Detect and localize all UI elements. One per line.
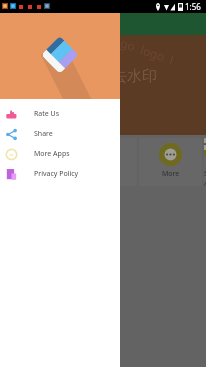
staticText: Save: [204, 169, 206, 186]
staticText: 去水印: [112, 67, 157, 86]
button[interactable]: Save: [204, 138, 206, 186]
staticText: o logo logo logo l: [66, 35, 177, 68]
staticText: Privacy Policy: [34, 169, 79, 179]
button[interactable]: Text: [74, 138, 137, 186]
button[interactable]: Privacy Policy: [0, 164, 120, 184]
button[interactable]: Share: [0, 124, 120, 144]
button[interactable]: More Apps: [0, 144, 120, 164]
button[interactable]: More: [139, 138, 202, 186]
staticText: 1:56: [185, 1, 201, 12]
button[interactable]: Crop: [9, 138, 72, 186]
button[interactable]: Rate Us: [0, 104, 120, 124]
staticText: More: [162, 169, 180, 179]
staticText: More Apps: [34, 149, 70, 159]
staticText: Crop: [33, 169, 49, 179]
staticText: Rate Us: [34, 109, 60, 119]
staticText: Share: [34, 129, 53, 139]
